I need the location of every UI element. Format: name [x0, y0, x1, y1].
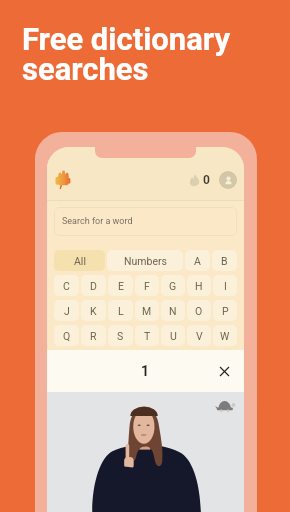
button[interactable]: N — [161, 300, 185, 321]
staticText: P — [222, 305, 229, 317]
button[interactable]: E — [108, 275, 133, 296]
button[interactable]: B — [212, 250, 237, 271]
staticText: R — [90, 330, 97, 342]
staticText: L — [118, 305, 124, 317]
staticText: M — [142, 305, 152, 317]
staticText: E — [118, 280, 124, 292]
button[interactable]: K — [81, 300, 106, 321]
staticText: 1 — [141, 363, 150, 379]
button[interactable]: W — [213, 325, 237, 346]
button[interactable]: A — [185, 250, 210, 271]
button[interactable]: U — [161, 325, 185, 346]
staticText: W — [220, 330, 230, 342]
staticText: Search for a word — [62, 216, 133, 227]
staticText: C — [63, 280, 70, 292]
button[interactable]: App logo — [55, 170, 71, 189]
staticText: V — [196, 330, 203, 342]
button[interactable]: T — [135, 325, 159, 346]
staticText: H — [195, 280, 203, 292]
button[interactable]: J — [54, 300, 79, 321]
button[interactable]: Slow motion — [214, 399, 236, 413]
staticText: I — [224, 280, 227, 292]
button[interactable]: S — [108, 325, 133, 346]
button[interactable]: Close — [216, 363, 232, 379]
staticText: Numbers — [124, 255, 167, 267]
staticText: Q — [63, 330, 71, 342]
button[interactable]: Profile — [219, 171, 237, 189]
button[interactable]: Numbers — [107, 250, 183, 271]
staticText: N — [169, 305, 177, 317]
staticText: G — [169, 280, 177, 292]
button[interactable]: Search for a word — [54, 207, 237, 236]
staticText: K — [90, 305, 97, 317]
button[interactable]: All — [54, 250, 105, 271]
button[interactable]: 0 — [189, 173, 210, 187]
button[interactable]: R — [81, 325, 106, 346]
staticText: T — [144, 330, 151, 342]
staticText: B — [221, 255, 228, 267]
button[interactable]: H — [187, 275, 211, 296]
button[interactable]: L — [108, 300, 133, 321]
button[interactable]: M — [135, 300, 159, 321]
button[interactable]: V — [187, 325, 211, 346]
button[interactable]: F — [135, 275, 159, 296]
staticText: J — [64, 305, 70, 317]
button[interactable]: Q — [54, 325, 79, 346]
button[interactable]: I — [213, 275, 237, 296]
staticText: F — [144, 280, 150, 292]
staticText: D — [90, 280, 97, 292]
button[interactable]: C — [54, 275, 79, 296]
staticText: A — [194, 255, 201, 267]
staticText: U — [170, 330, 177, 342]
staticText: Free dictionary searches — [22, 21, 231, 87]
staticText: 0 — [203, 173, 210, 187]
staticText: All — [74, 255, 86, 267]
button[interactable]: D — [81, 275, 106, 296]
button[interactable]: O — [187, 300, 211, 321]
staticText: S — [117, 330, 124, 342]
button[interactable]: P — [213, 300, 237, 321]
button[interactable]: G — [161, 275, 185, 296]
staticText: O — [195, 305, 203, 317]
